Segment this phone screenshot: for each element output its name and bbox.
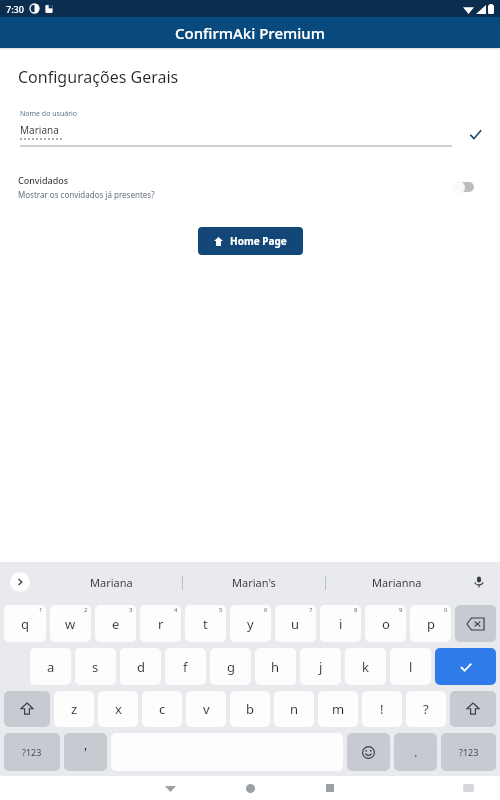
staticText: ' bbox=[84, 743, 87, 761]
button[interactable]: q bbox=[4, 605, 46, 642]
button[interactable]: a bbox=[30, 648, 71, 685]
staticText: l bbox=[409, 658, 413, 676]
staticText: g bbox=[227, 658, 235, 676]
staticText: . bbox=[414, 743, 418, 761]
button[interactable]: m bbox=[318, 691, 358, 727]
staticText: x bbox=[115, 700, 122, 718]
button[interactable]: r bbox=[140, 605, 181, 642]
button[interactable]: ' bbox=[64, 733, 107, 771]
button[interactable]: Marianna bbox=[326, 575, 468, 590]
button[interactable]: Confirmar bbox=[462, 121, 488, 147]
button[interactable]: l bbox=[390, 648, 431, 685]
button[interactable]: o bbox=[365, 605, 406, 642]
button[interactable]: Home Page bbox=[198, 227, 303, 255]
staticText: ConfirmAki Premium bbox=[175, 23, 325, 43]
button[interactable]: c bbox=[142, 691, 182, 727]
staticText: h bbox=[271, 658, 280, 676]
button[interactable]: f bbox=[165, 648, 206, 685]
staticText: v bbox=[203, 700, 210, 718]
staticText: w bbox=[65, 615, 76, 633]
button[interactable]: ? bbox=[406, 691, 446, 727]
button[interactable]: Expandir bbox=[10, 572, 30, 592]
button[interactable]: z bbox=[54, 691, 94, 727]
button[interactable]: d bbox=[120, 648, 161, 685]
button[interactable]: Voz bbox=[470, 573, 488, 591]
button[interactable]: enter bbox=[435, 648, 496, 685]
button[interactable]: k bbox=[345, 648, 386, 685]
staticText: 7 bbox=[309, 606, 313, 614]
staticText: k bbox=[362, 658, 369, 676]
staticText: 0 bbox=[444, 606, 448, 614]
button[interactable]: emoji bbox=[347, 733, 390, 771]
button[interactable]: Teclado bbox=[463, 784, 474, 792]
button[interactable]: . bbox=[394, 733, 437, 771]
button[interactable]: ?123 bbox=[4, 733, 60, 771]
button[interactable]: v bbox=[186, 691, 226, 727]
staticText: o bbox=[382, 615, 390, 633]
button[interactable]: x bbox=[98, 691, 138, 727]
staticText: y bbox=[247, 615, 254, 633]
staticText: ?123 bbox=[22, 746, 42, 758]
button[interactable]: n bbox=[274, 691, 314, 727]
staticText: c bbox=[159, 700, 166, 718]
button[interactable]: y bbox=[230, 605, 271, 642]
button[interactable]: Início bbox=[240, 778, 260, 798]
staticText: s bbox=[92, 658, 99, 676]
staticText: ?123 bbox=[459, 746, 479, 758]
staticText: 9 bbox=[399, 606, 403, 614]
staticText: 4 bbox=[174, 606, 178, 614]
staticText: q bbox=[21, 615, 29, 633]
staticText: z bbox=[71, 700, 78, 718]
staticText: b bbox=[246, 700, 254, 718]
staticText: Configurações Gerais bbox=[18, 66, 179, 88]
button[interactable]: ?123 bbox=[441, 733, 496, 771]
staticText: a bbox=[47, 658, 55, 676]
button[interactable]: ! bbox=[362, 691, 402, 727]
button[interactable]: s bbox=[75, 648, 116, 685]
button[interactable]: Marian's bbox=[183, 575, 325, 590]
button[interactable]: Mariana bbox=[40, 575, 182, 590]
staticText: u bbox=[291, 615, 300, 633]
staticText: 6 bbox=[264, 606, 268, 614]
staticText: Marian's bbox=[232, 575, 276, 590]
staticText: Mostrar os convidados já presentes? bbox=[18, 189, 155, 200]
staticText: Marianna bbox=[372, 575, 422, 590]
button[interactable]: Nome do usuário bbox=[20, 109, 452, 147]
staticText: Home Page bbox=[230, 234, 287, 248]
staticText: 7:30 bbox=[6, 3, 24, 15]
staticText: 5 bbox=[219, 606, 223, 614]
staticText: n bbox=[290, 700, 299, 718]
button[interactable]: w bbox=[50, 605, 91, 642]
button[interactable]: del bbox=[455, 605, 496, 642]
staticText: 2 bbox=[84, 606, 88, 614]
staticText: t bbox=[203, 615, 208, 633]
button[interactable]: t bbox=[185, 605, 226, 642]
button[interactable]: Recentes bbox=[320, 778, 340, 798]
staticText: f bbox=[183, 658, 188, 676]
staticText: Convidados bbox=[18, 174, 69, 186]
button[interactable]: p bbox=[410, 605, 451, 642]
staticText: p bbox=[427, 615, 435, 633]
staticText: Mariana bbox=[20, 123, 59, 137]
staticText: ! bbox=[380, 700, 384, 718]
staticText: d bbox=[137, 658, 145, 676]
staticText: j bbox=[319, 658, 323, 676]
button[interactable]: i bbox=[320, 605, 361, 642]
button[interactable]: b bbox=[230, 691, 270, 727]
button[interactable]: shift bbox=[450, 691, 496, 727]
button[interactable]: shift bbox=[4, 691, 50, 727]
staticText: 1 bbox=[39, 606, 43, 614]
button[interactable]: h bbox=[255, 648, 296, 685]
button[interactable]: u bbox=[275, 605, 316, 642]
staticText: Nome do usuário bbox=[20, 109, 78, 119]
button[interactable]: Voltar bbox=[165, 783, 176, 794]
button[interactable]: g bbox=[210, 648, 251, 685]
staticText: 8 bbox=[354, 606, 358, 614]
button[interactable]: Convidados bbox=[0, 174, 500, 200]
staticText: Mariana bbox=[90, 575, 133, 590]
staticText: ? bbox=[423, 700, 429, 718]
staticText: m bbox=[332, 700, 345, 718]
button[interactable]: j bbox=[300, 648, 341, 685]
button[interactable]: e bbox=[95, 605, 136, 642]
